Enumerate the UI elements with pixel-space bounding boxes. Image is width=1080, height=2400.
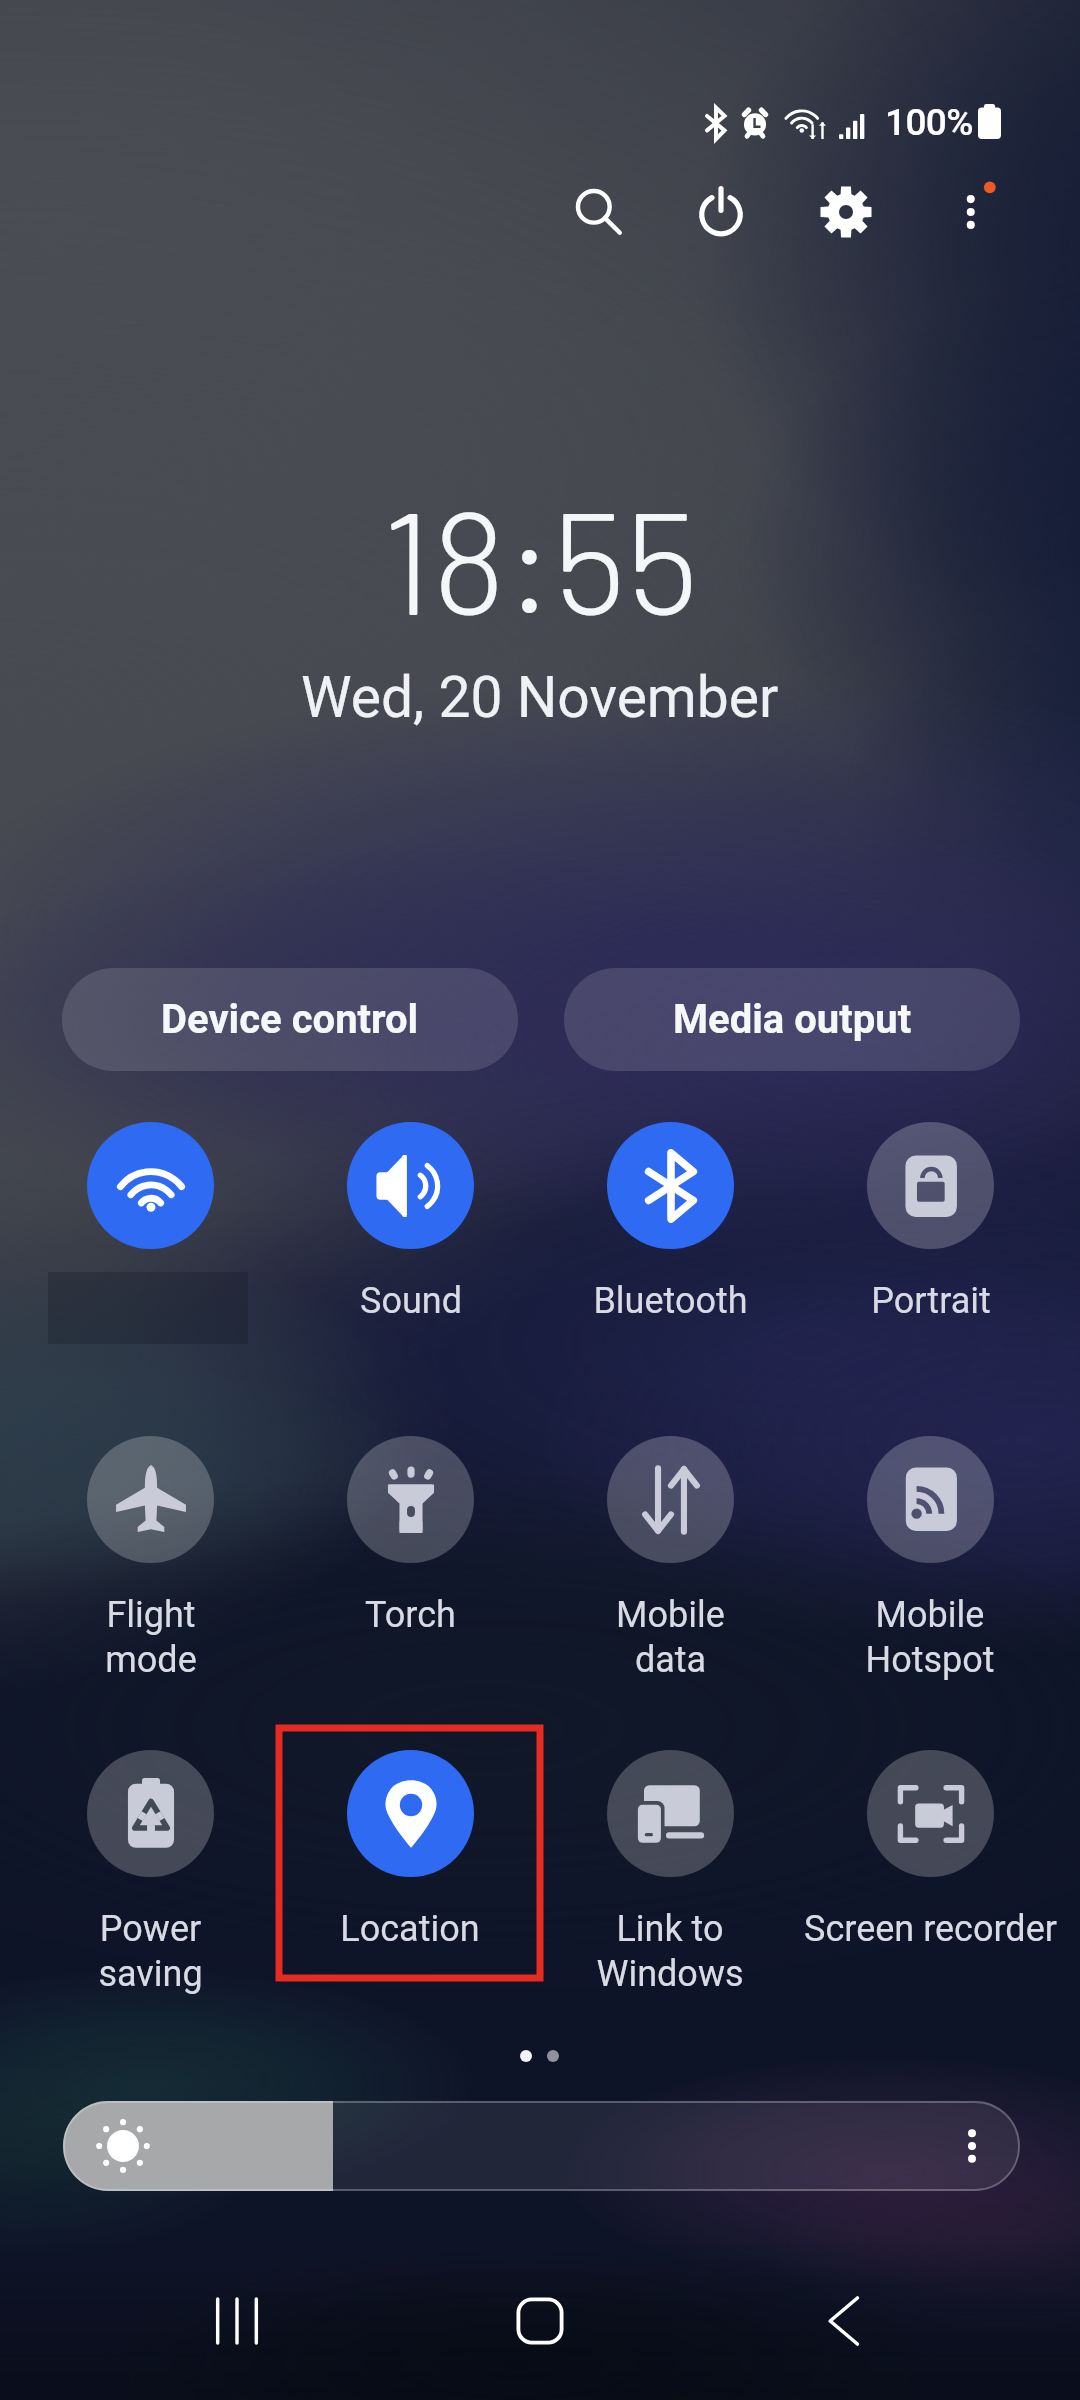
staticText: Flight mode [105,1594,197,1681]
staticText: Screen recorder [804,1908,1057,1950]
button[interactable]: Mobile data [520,1436,820,1686]
button[interactable]: Media output [564,968,1020,1071]
button[interactable]: Sound [260,1122,560,1372]
button[interactable]: Search [551,164,647,260]
staticText: Wed, 20 November [301,664,779,731]
staticText: Torch [365,1594,456,1636]
staticText: Power saving [98,1908,203,1995]
button[interactable]: Torch [260,1436,560,1686]
staticText: Link to Windows [596,1908,744,1995]
staticText: Sound [360,1280,462,1322]
button[interactable]: Location [260,1750,560,2000]
button[interactable] [63,2101,1020,2191]
button[interactable]: Bluetooth [520,1122,820,1372]
staticText: Mobile Hotspot [865,1594,995,1681]
button[interactable] [0,1122,300,1372]
button[interactable]: Device control [62,968,518,1071]
staticText: Mobile data [616,1594,725,1681]
staticText: Location [340,1908,480,1950]
button[interactable]: Mobile Hotspot [780,1436,1080,1686]
button[interactable]: Back [783,2261,903,2381]
button[interactable]: Home [480,2261,600,2381]
staticText: Device control [161,996,419,1043]
staticText: 100% [885,101,973,144]
staticText: Bluetooth [593,1280,748,1322]
staticText: Media output [673,996,912,1043]
button[interactable]: Power saving [0,1750,300,2000]
button[interactable]: Power [673,164,769,260]
button[interactable]: Settings [798,164,894,260]
button[interactable]: Screen recorder [780,1750,1080,2000]
button[interactable]: More options [925,164,1021,260]
staticText: 18:55 [382,472,699,644]
button[interactable]: Flight mode [0,1436,300,1686]
staticText: Portrait [871,1280,991,1322]
button[interactable]: Portrait [780,1122,1080,1372]
button[interactable]: Link to Windows [520,1750,820,2000]
button[interactable]: Recents [177,2261,297,2381]
